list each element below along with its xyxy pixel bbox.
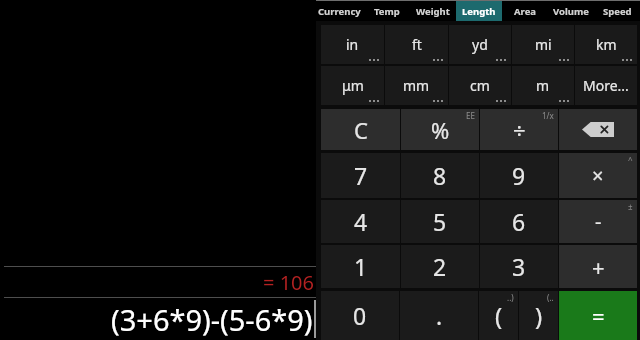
button[interactable]: . [400,291,478,340]
button[interactable]: C [321,109,400,150]
button[interactable]: 3 [480,245,558,288]
staticText: 0 [353,300,367,331]
staticText: 5 [433,206,447,237]
staticText: + [592,252,605,282]
staticText: 1/x [542,110,554,121]
staticText: Length [462,5,496,18]
button[interactable]: mm [385,66,448,105]
button[interactable]: ( [479,291,518,340]
button[interactable]: mi [512,25,574,64]
staticText: 4 [354,206,368,237]
button[interactable]: Area [502,1,548,21]
staticText: Speed [603,5,632,18]
staticText: cm [470,76,490,95]
button[interactable]: in [321,25,384,64]
staticText: Volume [553,5,589,18]
button[interactable]: Volume [548,1,594,21]
button[interactable]: Currency [316,1,363,21]
staticText: (.. [547,292,554,303]
staticText: ^ [628,154,633,165]
staticText: 6 [512,206,526,237]
staticText: ) [535,299,543,332]
button[interactable]: = [559,291,637,340]
staticText: Currency [318,5,361,18]
staticText: in [346,35,359,54]
staticText: More... [583,76,629,95]
staticText: C [354,115,368,145]
staticText: Weight [416,5,450,18]
button[interactable]: % [401,109,479,150]
staticText: mi [535,35,552,54]
staticText: 3 [512,251,526,282]
staticText: ..) [507,292,514,303]
button[interactable]: 5 [401,200,479,243]
staticText: m [536,76,550,95]
button[interactable]: yd [449,25,511,64]
button[interactable]: 1 [321,245,400,288]
staticText: ft [412,35,422,54]
button[interactable]: Backspace [559,109,637,150]
button[interactable]: (3+6*9)-(5-6*9) [0,298,316,340]
button[interactable]: μm [321,66,384,105]
staticText: mm [403,76,430,95]
button[interactable]: km [575,25,637,64]
button[interactable]: cm [449,66,511,105]
button[interactable]: More... [575,66,637,105]
button[interactable]: + [559,245,637,288]
button[interactable]: ) [519,291,558,340]
button[interactable]: 6 [480,200,558,243]
staticText: Temp [374,5,400,18]
staticText: km [596,35,617,54]
button[interactable]: 2 [401,245,479,288]
staticText: ± [628,201,633,212]
staticText: ÷ [513,115,526,145]
staticText: (3+6*9)-(5-6*9) [111,300,313,339]
staticText: = [592,301,605,331]
button[interactable]: 4 [321,200,400,243]
button[interactable]: × [559,153,637,198]
button[interactable]: 8 [401,153,479,198]
staticText: 7 [354,160,368,191]
staticText: 2 [433,251,447,282]
staticText: . [436,300,443,331]
staticText: = 106 [263,269,314,296]
staticText: ( [495,299,503,332]
staticText: - [595,208,602,235]
button[interactable]: 0 [321,291,399,340]
button[interactable]: Temp [363,1,410,21]
staticText: 9 [512,160,526,191]
button[interactable]: Weight [410,1,456,21]
staticText: EE [466,110,475,121]
staticText: % [431,115,450,145]
button[interactable]: m [512,66,574,105]
button[interactable]: 7 [321,153,400,198]
button[interactable]: Length [456,1,502,21]
button[interactable]: ÷ [480,109,558,150]
button[interactable]: 9 [480,153,558,198]
staticText: × [592,162,604,189]
button[interactable]: - [559,200,637,243]
staticText: 1 [354,251,368,282]
staticText: 8 [433,160,447,191]
staticText: μm [342,76,364,95]
button[interactable]: ft [385,25,448,64]
button[interactable]: Speed [594,1,640,21]
staticText: Area [514,5,536,18]
staticText: yd [472,35,488,54]
button[interactable]: = 106 [0,267,316,297]
